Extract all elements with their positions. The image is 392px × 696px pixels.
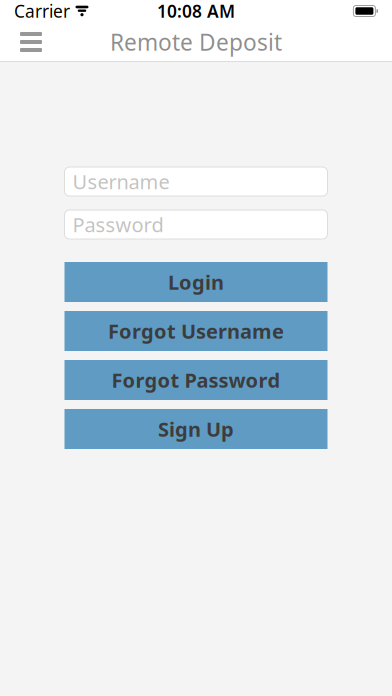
button[interactable]: Forgot Username — [64, 311, 327, 351]
button[interactable]: Sign Up — [64, 409, 327, 449]
button[interactable]: Login — [64, 262, 327, 302]
staticText: Sign Up — [158, 416, 234, 442]
staticText: Forgot Username — [108, 318, 284, 344]
button[interactable]: Password — [64, 210, 327, 239]
button[interactable]: Username — [64, 167, 327, 196]
staticText: Forgot Password — [111, 367, 280, 393]
button[interactable]: Menu — [8, 22, 54, 62]
staticText: Carrier — [14, 0, 70, 22]
staticText: 10:08 AM — [157, 0, 235, 22]
staticText: Username — [72, 168, 169, 195]
button[interactable]: Forgot Password — [64, 360, 327, 400]
staticText: Login — [168, 269, 224, 295]
staticText: Remote Deposit — [110, 27, 282, 57]
staticText: Password — [72, 211, 163, 238]
